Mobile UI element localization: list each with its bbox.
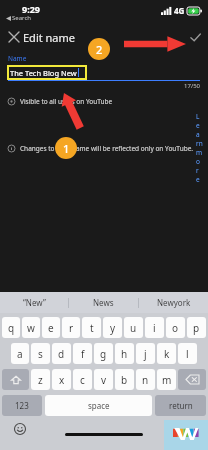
button[interactable]: k xyxy=(157,343,176,364)
staticText: z xyxy=(38,373,43,387)
staticText: Search xyxy=(12,14,31,22)
staticText: u xyxy=(130,321,137,335)
staticText: f xyxy=(81,347,85,361)
button[interactable]: d xyxy=(52,343,71,364)
staticText: 1 xyxy=(63,141,70,156)
staticText: o xyxy=(172,321,179,335)
staticText: Changes to your name will be reflected o… xyxy=(20,144,194,153)
button[interactable]: Newyork xyxy=(139,292,208,313)
staticText: k xyxy=(164,347,170,361)
staticText: News xyxy=(93,297,114,308)
button[interactable]: x xyxy=(52,369,71,390)
staticText: v xyxy=(101,373,107,387)
staticText: 9:29 xyxy=(22,3,40,15)
button[interactable]: n xyxy=(136,369,155,390)
button[interactable]: Backspace xyxy=(178,369,206,390)
staticText: Visible to all users on YouTube xyxy=(20,97,113,106)
button[interactable]: b xyxy=(115,369,134,390)
button[interactable]: c xyxy=(73,369,92,390)
staticText: 17/50 xyxy=(8,82,200,90)
staticText: q xyxy=(8,321,15,335)
staticText: l xyxy=(186,347,189,361)
staticText: 2 xyxy=(96,42,103,57)
button[interactable]: h xyxy=(115,343,134,364)
staticText: w xyxy=(27,321,35,335)
button[interactable]: o xyxy=(166,317,185,338)
button[interactable]: Confirm xyxy=(186,28,204,46)
staticText: m xyxy=(162,373,172,387)
staticText: d xyxy=(58,347,65,361)
staticText: g xyxy=(100,347,107,361)
staticText: The Tech Blog New xyxy=(10,68,77,78)
staticText: h xyxy=(121,347,128,361)
staticText: Learn more xyxy=(196,112,200,184)
staticText: c xyxy=(80,373,85,387)
button[interactable]: m xyxy=(157,369,176,390)
button[interactable]: z xyxy=(31,369,50,390)
staticText: Newyork xyxy=(157,297,191,308)
button[interactable]: t xyxy=(82,317,101,338)
staticText: Edit name xyxy=(23,30,76,45)
button[interactable]: a xyxy=(11,343,29,364)
button[interactable]: l xyxy=(178,343,197,364)
button[interactable]: u xyxy=(124,317,143,338)
staticText: 123 xyxy=(15,400,29,411)
staticText: return xyxy=(169,400,193,411)
button[interactable]: r xyxy=(62,317,80,338)
button[interactable]: q xyxy=(2,317,20,338)
staticText: y xyxy=(110,321,116,335)
staticText: a xyxy=(17,347,23,361)
button[interactable]: s xyxy=(31,343,50,364)
button[interactable]: “New” xyxy=(0,292,68,313)
button[interactable]: return xyxy=(155,395,206,416)
staticText: x xyxy=(59,373,65,387)
button[interactable]: space xyxy=(45,395,152,416)
staticText: n xyxy=(142,373,149,387)
button[interactable]: j xyxy=(136,343,155,364)
button[interactable]: w xyxy=(22,317,40,338)
staticText: i xyxy=(153,321,156,335)
button[interactable]: g xyxy=(94,343,113,364)
button[interactable]: i xyxy=(145,317,164,338)
button[interactable]: y xyxy=(103,317,122,338)
staticText: j xyxy=(144,347,147,361)
staticText: space xyxy=(88,400,110,411)
button[interactable]: p xyxy=(187,317,206,338)
button[interactable]: Changes to your name will be reflected o… xyxy=(8,112,200,184)
staticText: e xyxy=(48,321,54,335)
button[interactable]: Shift xyxy=(2,369,29,390)
staticText: p xyxy=(193,321,200,335)
button[interactable]: Close xyxy=(5,28,23,46)
staticText: t xyxy=(90,321,94,335)
staticText: r xyxy=(69,321,74,335)
button[interactable]: f xyxy=(73,343,92,364)
staticText: Name xyxy=(8,54,27,63)
staticText: 4G xyxy=(174,5,185,16)
button[interactable]: Emoji xyxy=(14,423,26,435)
button[interactable]: e xyxy=(42,317,60,338)
button[interactable]: Visible to all users on YouTube xyxy=(8,97,200,106)
staticText: b xyxy=(121,373,128,387)
staticText: s xyxy=(38,347,43,361)
button[interactable]: 123 xyxy=(2,395,42,416)
button[interactable]: News xyxy=(69,292,138,313)
staticText: “New” xyxy=(23,297,46,308)
button[interactable]: v xyxy=(94,369,113,390)
